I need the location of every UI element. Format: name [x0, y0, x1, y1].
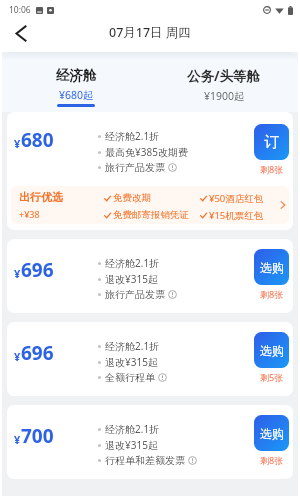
- staticText: 经济舱2.1折: [105, 422, 160, 436]
- staticText: 经济舱2.1折: [105, 256, 160, 270]
- button[interactable]: 出行优选: [11, 186, 289, 224]
- staticText: 700: [21, 423, 54, 449]
- staticText: 退改¥315起: [105, 355, 158, 369]
- staticText: 经济舱2.1折: [105, 339, 160, 353]
- staticText: 旅行产品发票: [105, 161, 165, 174]
- staticText: ¥: [14, 266, 21, 281]
- staticText: 全额行程单: [105, 371, 155, 384]
- staticText: 选购: [260, 260, 284, 275]
- button[interactable]: 选购: [254, 249, 289, 285]
- staticText: ¥50酒店红包: [209, 192, 264, 205]
- button[interactable]: Back: [9, 21, 33, 45]
- button[interactable]: ¥: [7, 239, 293, 313]
- staticText: ¥680起: [59, 88, 94, 102]
- button[interactable]: 订: [254, 124, 289, 160]
- button[interactable]: ¥: [7, 405, 293, 479]
- staticText: ¥: [14, 432, 21, 447]
- staticText: 出行优选: [19, 190, 63, 204]
- staticText: 行程单和差额发票: [105, 454, 185, 467]
- staticText: 经济舱: [56, 67, 97, 84]
- staticText: 免费改期: [113, 192, 151, 204]
- button[interactable]: 公务/头等舱: [150, 52, 298, 112]
- staticText: 剩8张: [260, 454, 284, 466]
- staticText: 680: [21, 127, 54, 153]
- staticText: 07月17日 周四: [109, 24, 191, 41]
- staticText: 剩5张: [260, 371, 284, 383]
- staticText: 选购: [260, 343, 284, 358]
- staticText: 最高免¥385改期费: [105, 145, 188, 159]
- staticText: ¥: [14, 349, 21, 364]
- staticText: 订: [264, 133, 279, 152]
- button[interactable]: 选购: [254, 415, 289, 451]
- staticText: 退改¥315起: [105, 438, 158, 452]
- staticText: ¥: [14, 136, 21, 151]
- staticText: 剩8张: [260, 163, 284, 175]
- staticText: 剩8张: [260, 288, 284, 300]
- staticText: ¥1900起: [204, 89, 245, 103]
- staticText: 退改¥315起: [105, 272, 158, 286]
- staticText: 免费邮寄报销凭证: [113, 209, 189, 221]
- staticText: 696: [21, 340, 54, 366]
- staticText: 选购: [260, 426, 284, 441]
- staticText: 10:06: [9, 4, 31, 16]
- staticText: 696: [21, 257, 54, 283]
- button[interactable]: 经济舱: [2, 52, 150, 112]
- button[interactable]: 选购: [254, 332, 289, 368]
- button[interactable]: ¥: [7, 322, 293, 396]
- staticText: 公务/头等舱: [187, 67, 261, 85]
- staticText: ¥15机票红包: [209, 209, 264, 222]
- staticText: +¥38: [19, 208, 40, 220]
- staticText: 经济舱2.1折: [105, 129, 160, 143]
- staticText: 旅行产品发票: [105, 288, 165, 301]
